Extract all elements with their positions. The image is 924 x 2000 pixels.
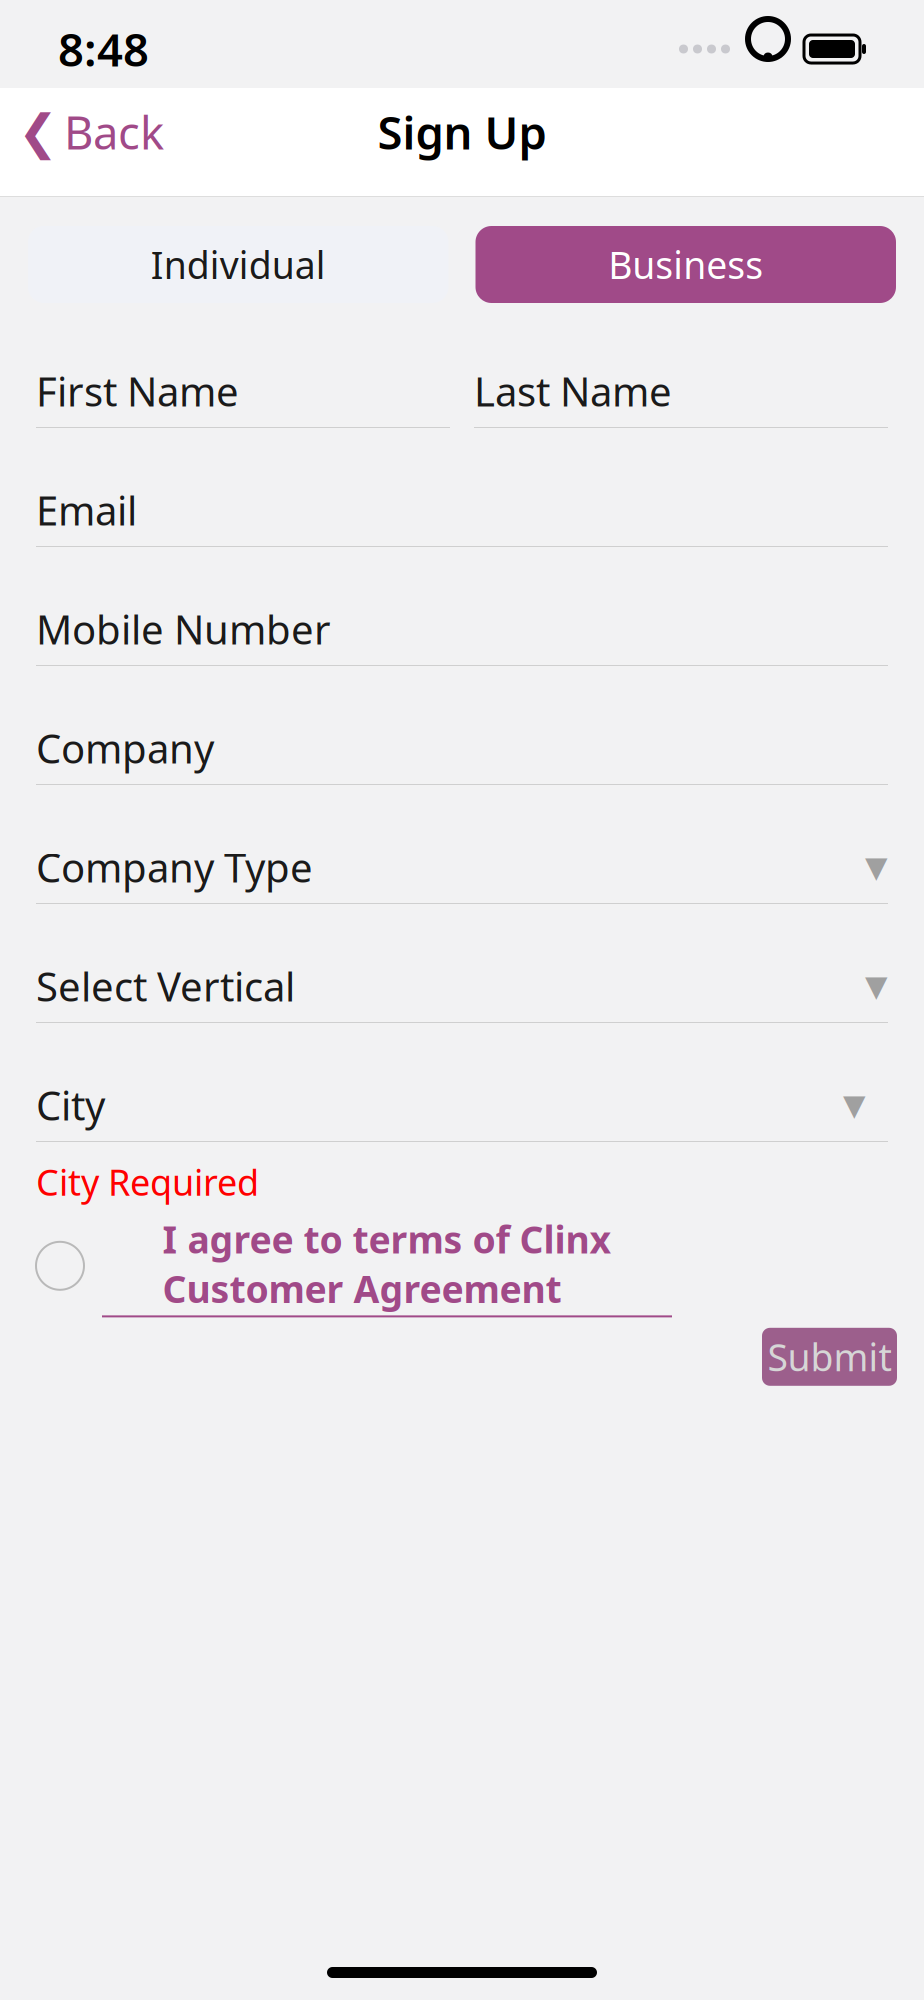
button[interactable]: Business	[475, 226, 896, 303]
button[interactable]: Submit	[762, 1328, 897, 1386]
staticText: Company Type	[36, 840, 313, 893]
staticText: Submit	[767, 1332, 891, 1382]
staticText: ▼	[865, 969, 888, 1003]
staticText: Back	[64, 102, 164, 162]
staticText: City	[36, 1078, 105, 1131]
button[interactable]: I agree to terms of Clinx Customer Agree…	[0, 1228, 924, 1304]
staticText: Sign Up	[377, 102, 546, 162]
staticText: Select Vertical	[36, 959, 295, 1012]
staticText: ▼	[865, 850, 888, 884]
staticText: Last Name	[474, 364, 672, 417]
staticText: Company	[36, 721, 214, 774]
button[interactable]: Individual	[28, 226, 448, 303]
staticText: Business	[608, 240, 763, 289]
staticText: First Name	[36, 364, 239, 417]
staticText: ▼	[843, 1088, 866, 1122]
staticText: Email	[36, 483, 137, 536]
staticText: I agree to terms of Clinx Customer Agree…	[162, 1214, 611, 1313]
button[interactable]: ❮	[0, 97, 182, 167]
staticText: Mobile Number	[36, 602, 331, 655]
staticText: ❮	[18, 105, 58, 159]
staticText: Individual	[151, 240, 326, 289]
staticText: City Required	[36, 1158, 259, 1206]
staticText: 8:48	[58, 19, 149, 79]
